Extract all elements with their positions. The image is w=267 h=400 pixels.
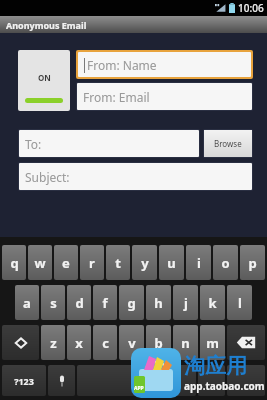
button[interactable]: b [146, 325, 171, 360]
button[interactable]: From: Email [77, 83, 252, 110]
staticText: s [50, 294, 57, 312]
staticText: o [221, 254, 230, 272]
button[interactable]: o [213, 245, 238, 280]
button[interactable]: f [93, 285, 117, 320]
staticText: x [75, 334, 83, 352]
staticText: app.taobao.com [184, 379, 265, 393]
button[interactable]: ?123 [2, 365, 46, 396]
staticText: f [102, 294, 108, 312]
button[interactable]: From: Name [78, 52, 251, 77]
staticText: n [181, 334, 190, 352]
button[interactable]: e [54, 245, 78, 280]
staticText: To: [25, 136, 42, 152]
button[interactable]: Backspace [227, 325, 265, 360]
staticText: Browse [214, 138, 242, 149]
button[interactable]: p [240, 245, 265, 280]
button[interactable]: l [227, 285, 252, 320]
staticText: r [89, 254, 95, 272]
button[interactable]: z [41, 325, 65, 360]
staticText: y [141, 254, 149, 272]
staticText: d [75, 294, 84, 312]
staticText: 淘应用 [184, 353, 247, 379]
staticText: p [248, 254, 257, 272]
staticText: q [10, 254, 19, 272]
button[interactable]: d [67, 285, 91, 320]
staticText: j [184, 294, 188, 312]
button[interactable]: Browse [204, 130, 252, 157]
button[interactable]: Subject: [19, 163, 252, 190]
staticText: k [208, 294, 217, 312]
button[interactable]: k [200, 285, 225, 320]
staticText: l [238, 294, 242, 312]
button[interactable]: Voice input [48, 365, 75, 396]
button[interactable]: q [2, 245, 26, 280]
button[interactable]: u [159, 245, 184, 280]
staticText: 10:06 [238, 1, 264, 15]
staticText: v [128, 334, 136, 352]
button[interactable]: s [41, 285, 65, 320]
button[interactable]: v [119, 325, 144, 360]
staticText: g [127, 294, 136, 312]
staticText: APP [134, 385, 144, 392]
button[interactable]: n [173, 325, 198, 360]
button[interactable]: g [119, 285, 144, 320]
staticText: Subject: [25, 169, 70, 185]
staticText: From: Email [83, 89, 150, 105]
button[interactable]: To: [19, 130, 199, 157]
staticText: z [50, 334, 57, 352]
staticText: h [154, 294, 163, 312]
button[interactable]: h [146, 285, 171, 320]
staticText: a [23, 294, 31, 312]
staticText: Anonymous Email [6, 19, 87, 31]
button[interactable]: j [173, 285, 198, 320]
button[interactable]: y [132, 245, 157, 280]
staticText: c [102, 334, 109, 352]
staticText: w [34, 254, 46, 272]
button[interactable]: r [80, 245, 104, 280]
staticText: e [62, 254, 70, 272]
button[interactable] [227, 365, 265, 396]
staticText: t [115, 254, 121, 272]
button[interactable]: c [93, 325, 117, 360]
staticText: ?123 [14, 375, 34, 387]
button[interactable]: t [106, 245, 130, 280]
button[interactable]: i [186, 245, 211, 280]
button[interactable]: ON [18, 50, 70, 111]
button[interactable]: a [15, 285, 39, 320]
staticText: b [154, 334, 163, 352]
button[interactable] [77, 365, 196, 396]
staticText: ON [38, 72, 51, 83]
button[interactable]: w [28, 245, 52, 280]
staticText: From: Name [87, 57, 157, 73]
button[interactable]: x [67, 325, 91, 360]
staticText: i [197, 254, 201, 272]
button[interactable]: Shift [2, 325, 39, 360]
button[interactable] [198, 365, 225, 396]
staticText: m [206, 334, 219, 352]
staticText: u [167, 254, 176, 272]
button[interactable]: m [200, 325, 225, 360]
